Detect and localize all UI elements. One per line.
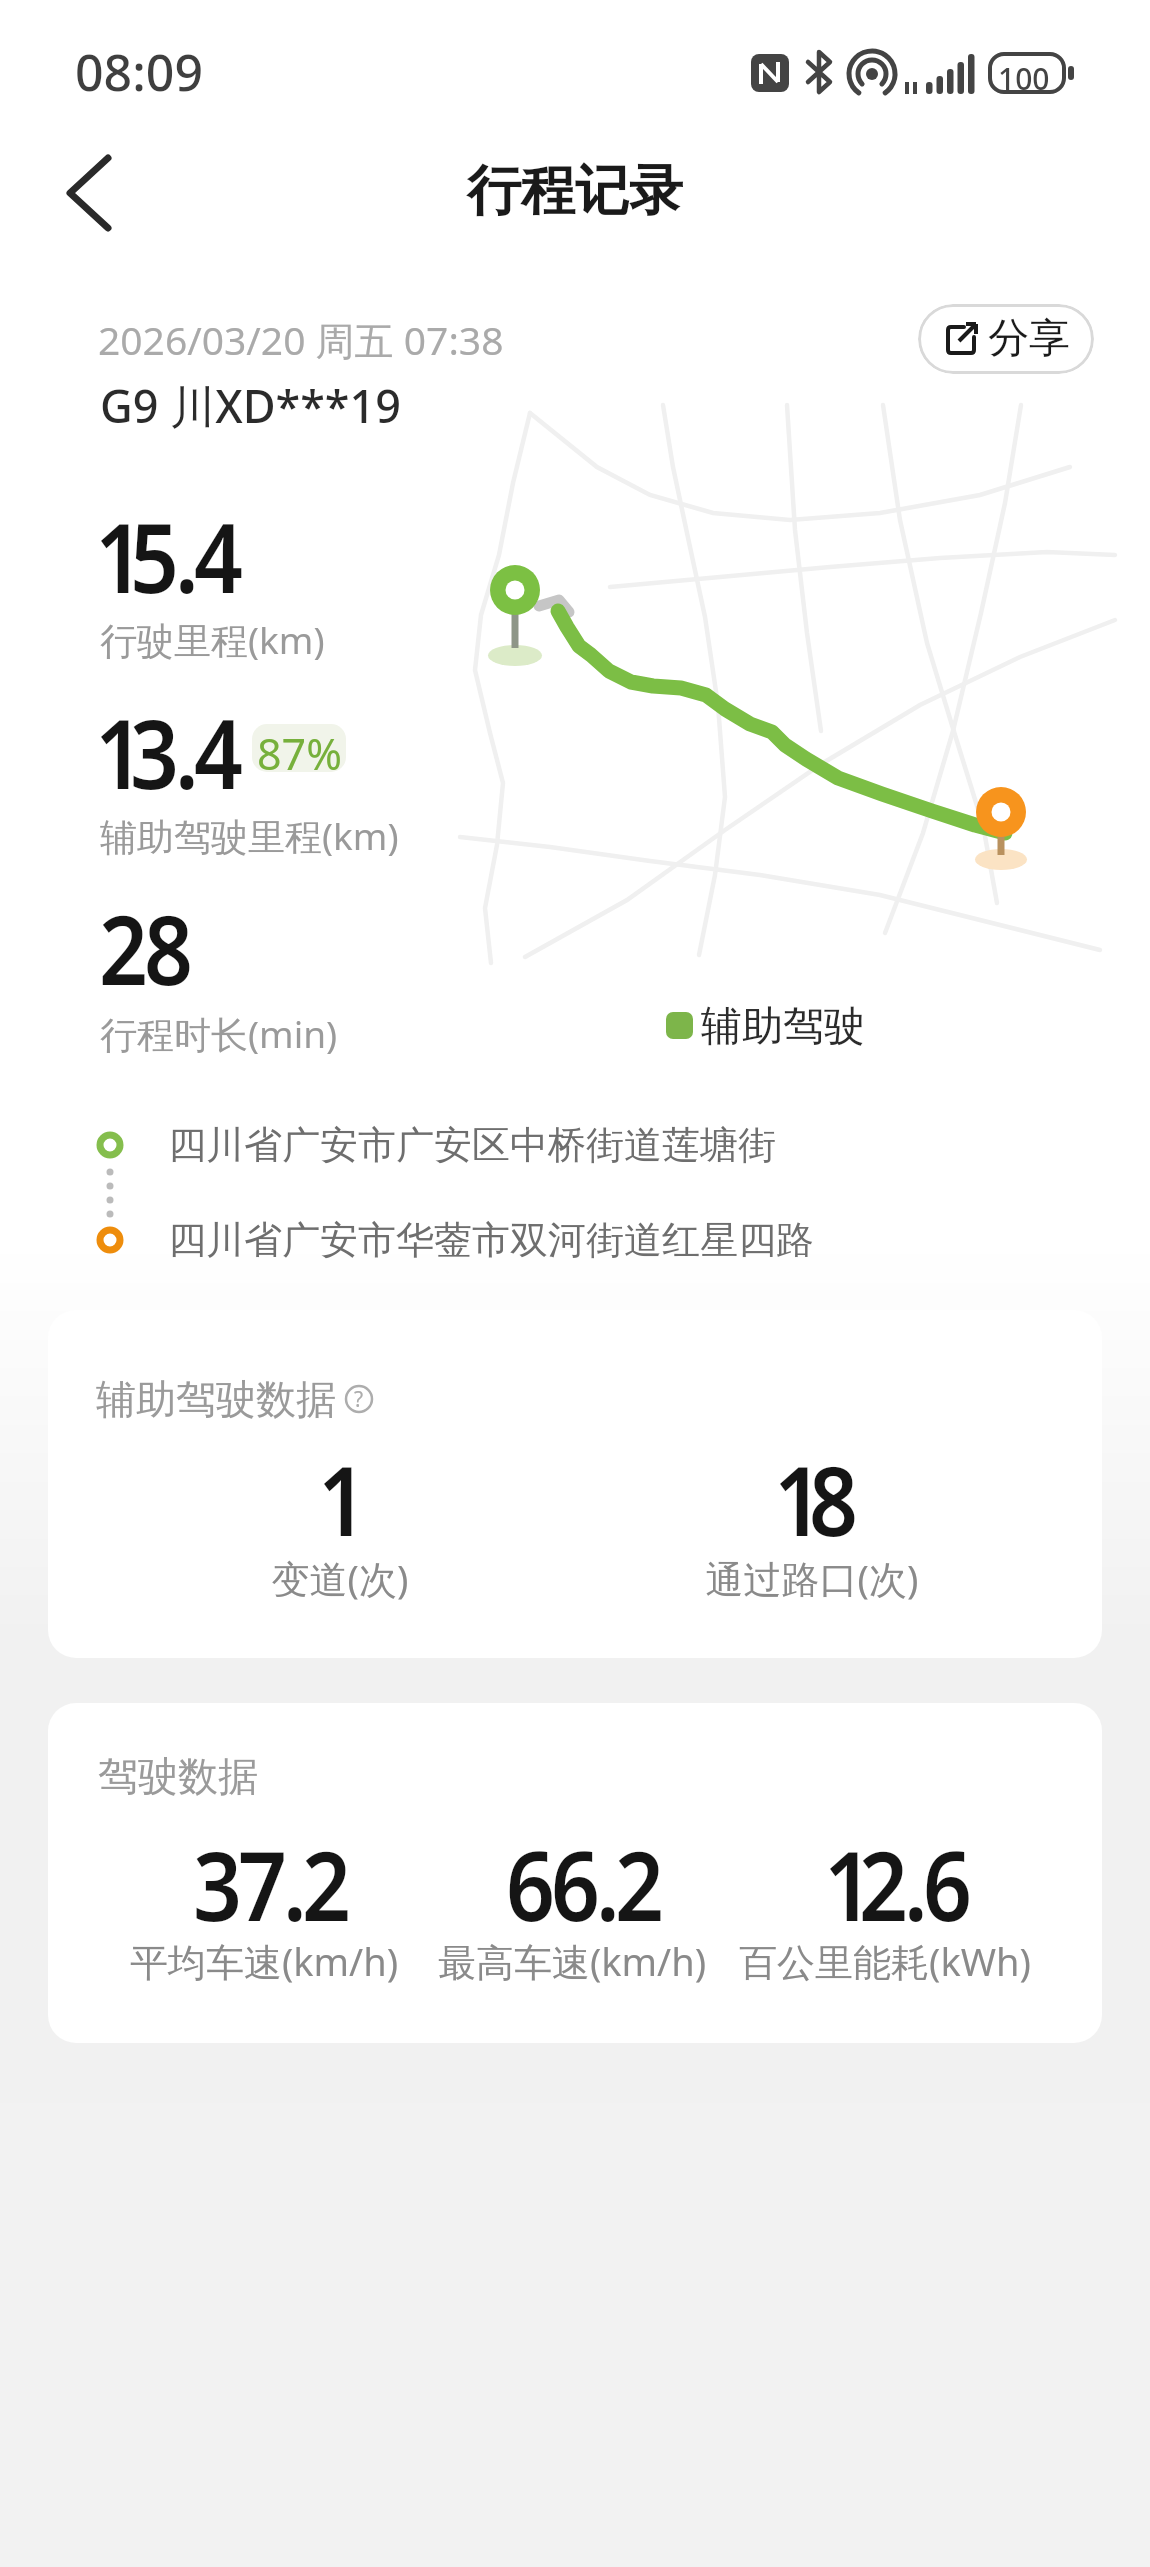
staticText: 7 <box>238 1819 287 1948</box>
staticText: . <box>596 1819 620 1948</box>
staticText: 6 <box>551 1819 600 1948</box>
staticText: . <box>904 1819 928 1948</box>
staticText: 2 <box>99 883 148 1012</box>
staticText: 1 <box>824 1819 873 1948</box>
button[interactable] <box>50 140 160 250</box>
staticText: 3 <box>193 1819 242 1948</box>
staticText: 08:09 <box>75 38 203 106</box>
staticText: 辅助驾驶 <box>701 1001 865 1053</box>
staticText: 百公里能耗(kWh) <box>685 1935 1085 1987</box>
staticText: 行驶里程(km) <box>100 614 325 665</box>
staticText: 100 <box>998 58 1050 99</box>
staticText: 四川省广安市华蓥市双河街道红星四路 <box>168 1216 814 1264</box>
staticText: G9 川XD***19 <box>100 375 402 436</box>
staticText: 6 <box>506 1819 555 1948</box>
staticText: . <box>175 687 199 816</box>
staticText: 87% <box>257 724 342 772</box>
staticText: 四川省广安市广安区中桥街道莲塘街 <box>168 1121 776 1169</box>
staticText: 8 <box>144 883 193 1012</box>
staticText: 行程时长(min) <box>100 1008 338 1059</box>
button[interactable]: ? <box>344 1384 374 1414</box>
staticText: 4 <box>194 687 243 816</box>
staticText: 辅助驾驶里程(km) <box>100 810 399 861</box>
staticText: 行程记录 <box>467 157 683 225</box>
staticText: 2026/03/20 周五 07:38 <box>98 313 504 366</box>
staticText: 8 <box>809 1434 858 1563</box>
staticText: ? <box>354 1385 364 1414</box>
staticText: 4 <box>194 491 243 620</box>
staticText: . <box>283 1819 307 1948</box>
staticText: 变道(次) <box>140 1552 540 1604</box>
staticText: 平均车速(km/h) <box>64 1935 464 1987</box>
staticText: 1 <box>318 1434 367 1563</box>
staticText: . <box>175 491 199 620</box>
staticText: 最高车速(km/h) <box>372 1935 772 1987</box>
staticText: 1 <box>95 687 144 816</box>
staticText: 驾驶数据 <box>98 1751 258 1801</box>
staticText: 通过路口(次) <box>612 1552 1012 1604</box>
staticText: 2 <box>859 1819 908 1948</box>
staticText: 2 <box>615 1819 664 1948</box>
staticText: 辅助驾驶数据 <box>96 1374 336 1424</box>
button[interactable]: 分享 <box>918 304 1094 374</box>
staticText: 分享 <box>988 313 1070 365</box>
staticText: 3 <box>130 687 179 816</box>
staticText: 2 <box>302 1819 351 1948</box>
staticText: 1 <box>774 1434 823 1563</box>
staticText: 5 <box>130 491 179 620</box>
staticText: 6 <box>923 1819 972 1948</box>
staticText: 1 <box>95 491 144 620</box>
